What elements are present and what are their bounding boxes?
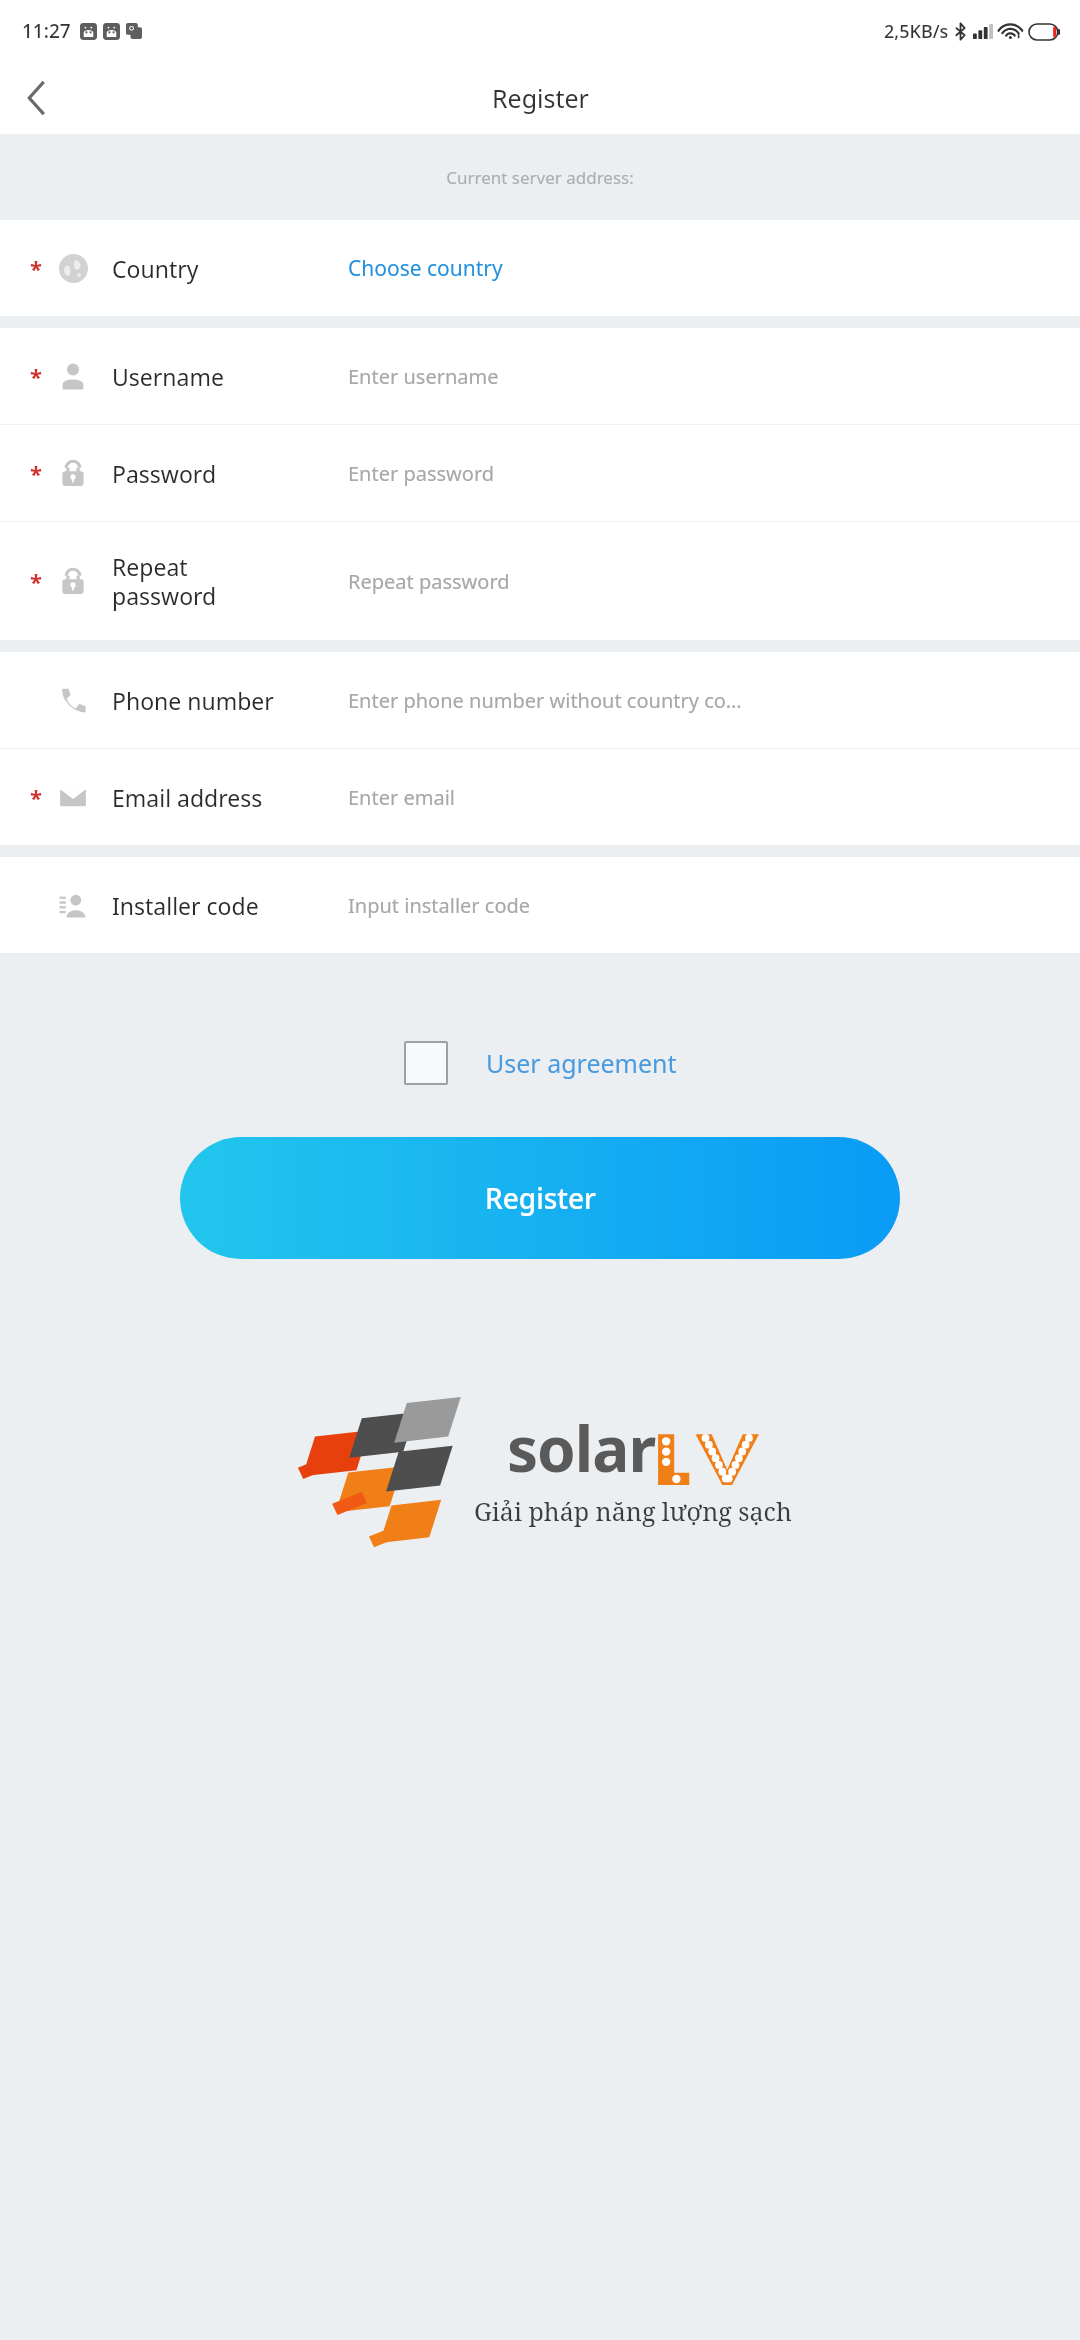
- staticText: *: [30, 253, 42, 283]
- staticText: Username: [112, 361, 224, 392]
- staticText: Repeat password: [112, 551, 217, 612]
- staticText: Repeat password: [348, 568, 510, 595]
- staticText: *: [30, 566, 42, 596]
- staticText: Phone number: [112, 685, 274, 716]
- staticText: Installer code: [112, 890, 259, 921]
- staticText: Choose country: [348, 254, 503, 283]
- staticText: *: [30, 458, 42, 488]
- staticText: Current server address:: [446, 166, 634, 189]
- staticText: Country: [112, 253, 199, 284]
- button[interactable]: Back: [8, 70, 64, 126]
- button[interactable]: *: [0, 328, 1080, 424]
- staticText: solar: [507, 1406, 656, 1490]
- button[interactable]: *: [0, 522, 1080, 640]
- staticText: Enter password: [348, 460, 495, 487]
- button[interactable]: Register: [180, 1137, 900, 1259]
- staticText: *: [30, 782, 42, 812]
- staticText: 2,5KB/s: [884, 19, 949, 44]
- staticText: User agreement: [486, 1046, 677, 1080]
- staticText: Enter phone number without country co…: [348, 687, 742, 714]
- staticText: 11:27: [22, 18, 71, 44]
- button[interactable]: *: [0, 220, 1080, 316]
- button[interactable]: *: [0, 749, 1080, 845]
- button[interactable]: Phone number: [0, 652, 1080, 748]
- staticText: Enter username: [348, 363, 499, 390]
- staticText: Password: [112, 458, 217, 489]
- button[interactable]: Installer code: [0, 857, 1080, 953]
- staticText: *: [30, 361, 42, 391]
- staticText: Register: [485, 1179, 596, 1217]
- staticText: Email address: [112, 782, 263, 813]
- staticText: Giải pháp năng lượng sạch: [474, 1494, 792, 1528]
- button[interactable]: User agreement: [404, 1041, 677, 1085]
- staticText: Input installer code: [348, 892, 531, 919]
- button[interactable]: *: [0, 425, 1080, 521]
- staticText: Register: [492, 81, 589, 115]
- staticText: Enter email: [348, 784, 455, 811]
